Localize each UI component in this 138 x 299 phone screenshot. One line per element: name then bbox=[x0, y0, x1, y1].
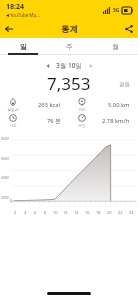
staticText: 4000 bbox=[1, 175, 10, 180]
staticText: 일 bbox=[20, 42, 27, 51]
button[interactable]: Previous day bbox=[42, 60, 53, 71]
staticText: 265 kcal bbox=[38, 101, 61, 109]
staticText: YouTube Mu... bbox=[10, 12, 40, 18]
staticText: 10 bbox=[53, 210, 58, 215]
button[interactable]: 일 bbox=[0, 38, 46, 55]
staticText: 8000 bbox=[1, 136, 10, 141]
staticText: 8 bbox=[44, 210, 47, 215]
staticText: 24 bbox=[129, 210, 134, 215]
staticText: 2.78 km/h bbox=[102, 117, 130, 125]
staticText: 4 bbox=[24, 210, 27, 215]
staticText: 통계 bbox=[61, 24, 78, 35]
button[interactable]: 주 bbox=[46, 38, 92, 55]
staticText: 7,353 bbox=[47, 72, 91, 92]
staticText: 거리 bbox=[78, 107, 86, 112]
staticText: 속도 bbox=[78, 123, 86, 128]
staticText: 월 bbox=[112, 42, 119, 51]
staticText: 14 bbox=[74, 210, 79, 215]
button[interactable]: Next day bbox=[85, 60, 96, 71]
staticText: 시간 bbox=[9, 123, 17, 128]
staticText: 6000 bbox=[1, 156, 10, 161]
staticText: 5G bbox=[113, 7, 120, 14]
button[interactable]: 거리 bbox=[69, 98, 138, 112]
staticText: 걸음 bbox=[119, 81, 130, 88]
staticText: 3월 10일 bbox=[56, 61, 82, 70]
staticText: 18:24 bbox=[6, 2, 24, 12]
staticText: 2 bbox=[14, 210, 17, 215]
button[interactable]: 칼로리 bbox=[0, 98, 69, 112]
staticText: 20 bbox=[107, 210, 112, 215]
staticText: 18 bbox=[96, 210, 101, 215]
button[interactable]: 시간 bbox=[0, 114, 69, 128]
staticText: 22 bbox=[118, 210, 123, 215]
button[interactable]: Back bbox=[0, 20, 18, 38]
button[interactable]: 속도 bbox=[69, 114, 138, 128]
staticText: 76 분 bbox=[47, 117, 61, 125]
button[interactable]: 월 bbox=[92, 38, 138, 55]
staticText: 칼로리 bbox=[7, 107, 19, 112]
staticText: 16 bbox=[85, 210, 90, 215]
staticText: 주 bbox=[66, 42, 73, 51]
staticText: 12 bbox=[63, 210, 68, 215]
button[interactable]: Share bbox=[120, 20, 138, 38]
staticText: 5.00 km bbox=[108, 101, 130, 109]
staticText: 2000 bbox=[1, 195, 10, 200]
staticText: 6 bbox=[34, 210, 37, 215]
